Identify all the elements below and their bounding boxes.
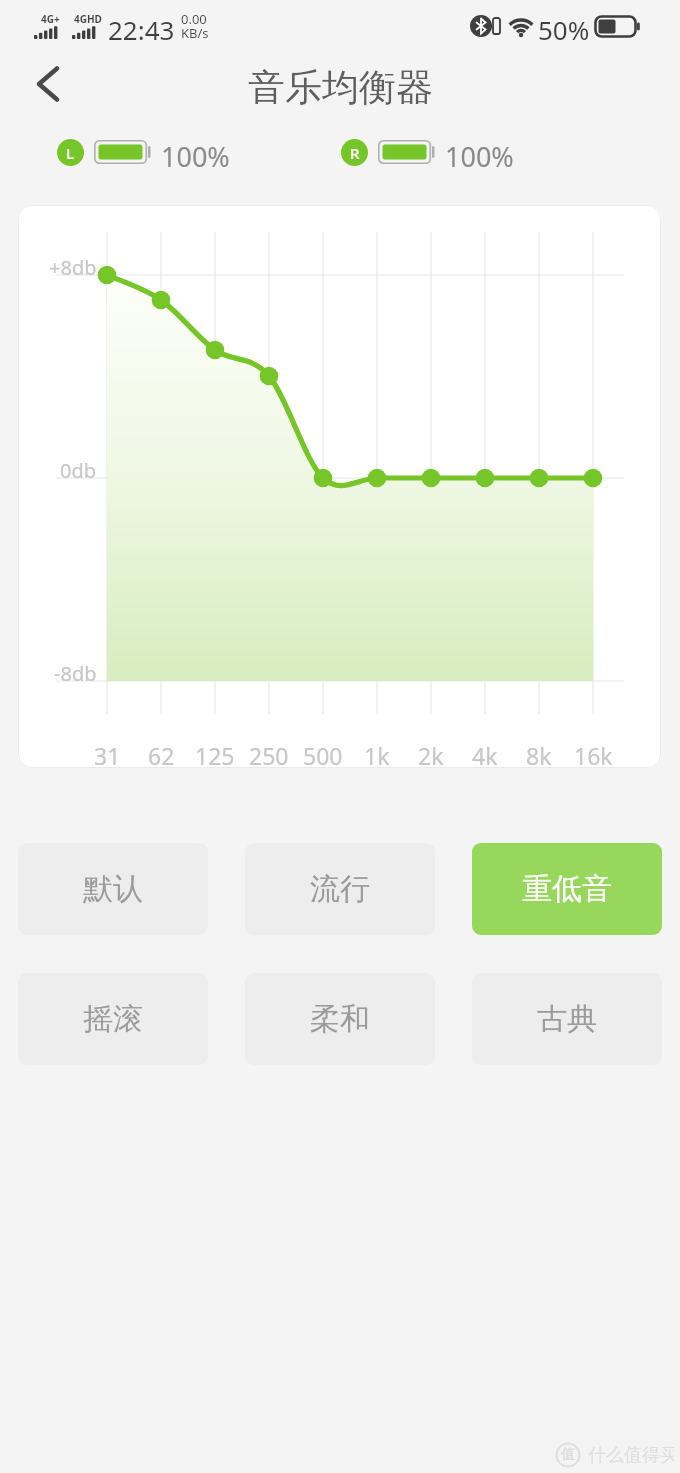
staticText: 流行 [310,870,370,908]
staticText: R [350,143,360,163]
staticText: 柔和 [310,1000,370,1038]
button[interactable]: 柔和 [245,973,435,1065]
staticText: 500 [303,740,343,766]
staticText: 0db [60,457,97,481]
staticText: 62 [148,740,175,766]
staticText: 音乐均衡器 [248,64,433,108]
button[interactable]: 古典 [472,973,662,1065]
staticText: 4G+ [41,12,60,26]
staticText: +8db [49,254,97,278]
staticText: 22:43 [108,12,175,42]
staticText: 1k [364,740,390,766]
staticText: KB/s [181,24,209,39]
staticText: 值 [561,1446,575,1464]
staticText: 0.00 [181,10,207,25]
staticText: 什么值得买 [588,1444,674,1466]
staticText: 摇滚 [83,1000,143,1038]
staticText: 古典 [537,1000,597,1038]
staticText: 重低音 [522,870,612,908]
button[interactable] [24,60,72,108]
staticText: 8k [526,740,552,766]
staticText: 2k [418,740,444,766]
staticText: 16k [574,740,613,766]
staticText: 100% [445,138,514,167]
button[interactable]: 重低音 [472,843,662,935]
staticText: 250 [249,740,289,766]
button[interactable]: 流行 [245,843,435,935]
staticText: 4GHD [74,12,102,26]
staticText: 31 [94,740,121,766]
staticText: 50% [538,12,590,42]
staticText: -8db [54,660,97,684]
staticText: 4k [472,740,498,766]
staticText: L [66,143,75,163]
staticText: 默认 [83,870,143,908]
staticText: 100% [161,138,230,167]
staticText: 125 [195,740,235,766]
button[interactable]: 默认 [18,843,208,935]
button[interactable]: 摇滚 [18,973,208,1065]
